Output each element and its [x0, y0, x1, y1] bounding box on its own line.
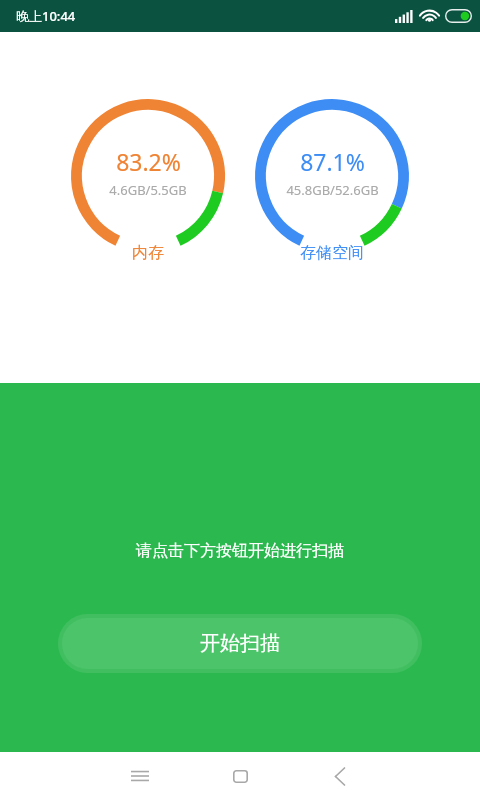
staticText: 存储空间 [300, 243, 364, 263]
staticText: 4.6GB/5.5GB [109, 181, 187, 199]
staticText: 晚上10:44 [16, 7, 76, 25]
button[interactable]: 83.2% [70, 98, 226, 254]
button[interactable]: 开始扫描 [62, 618, 418, 669]
staticText: 内存 [132, 243, 164, 263]
staticText: 83.2% [116, 146, 181, 177]
staticText: 开始扫描 [200, 631, 280, 656]
button[interactable]: 87.1% [254, 98, 410, 254]
button[interactable]: Home [216, 752, 264, 800]
staticText: 请点击下方按钮开始进行扫描 [136, 541, 344, 561]
staticText: 45.8GB/52.6GB [286, 181, 379, 199]
staticText: 87.1% [300, 146, 365, 177]
button[interactable]: Back [316, 752, 364, 800]
button[interactable]: Recent apps [116, 752, 164, 800]
